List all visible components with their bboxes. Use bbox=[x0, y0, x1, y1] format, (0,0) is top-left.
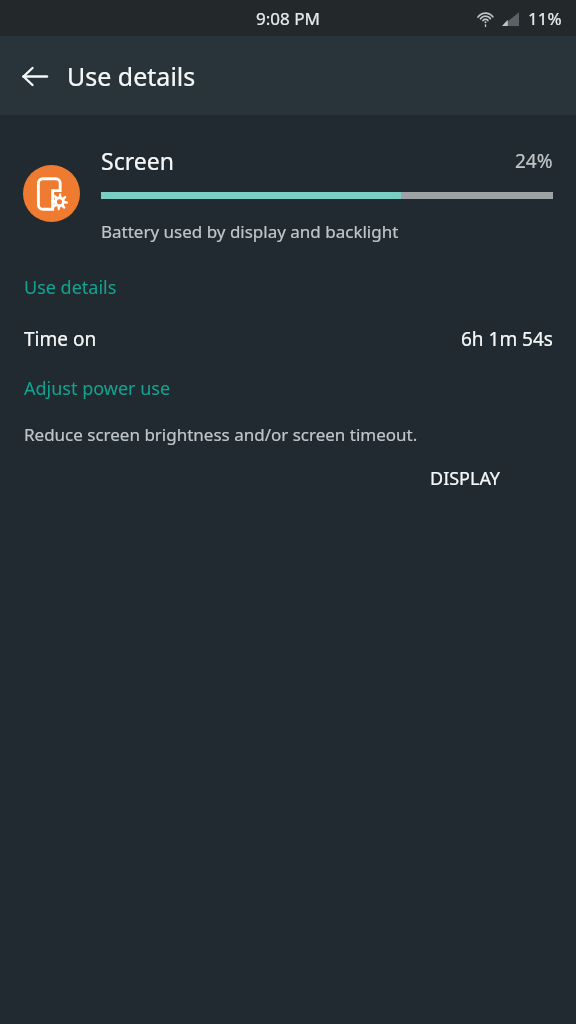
staticText: DISPLAY bbox=[430, 466, 501, 491]
staticText: Use details bbox=[67, 59, 196, 93]
button[interactable]: DISPLAY bbox=[410, 458, 521, 499]
staticText: 11% bbox=[528, 7, 562, 30]
staticText: 6h 1m 54s bbox=[461, 326, 553, 352]
staticText: Adjust power use bbox=[24, 376, 171, 401]
staticText: Reduce screen brightness and/or screen t… bbox=[24, 423, 418, 446]
staticText: 9:08 PM bbox=[256, 7, 320, 30]
staticText: Battery used by display and backlight bbox=[101, 220, 399, 243]
button[interactable]: Back bbox=[8, 50, 60, 102]
staticText: 24% bbox=[515, 148, 553, 174]
staticText: Screen bbox=[101, 145, 515, 176]
staticText: Use details bbox=[24, 275, 117, 300]
staticText: Time on bbox=[24, 326, 461, 352]
button[interactable]: Time on bbox=[0, 322, 576, 356]
